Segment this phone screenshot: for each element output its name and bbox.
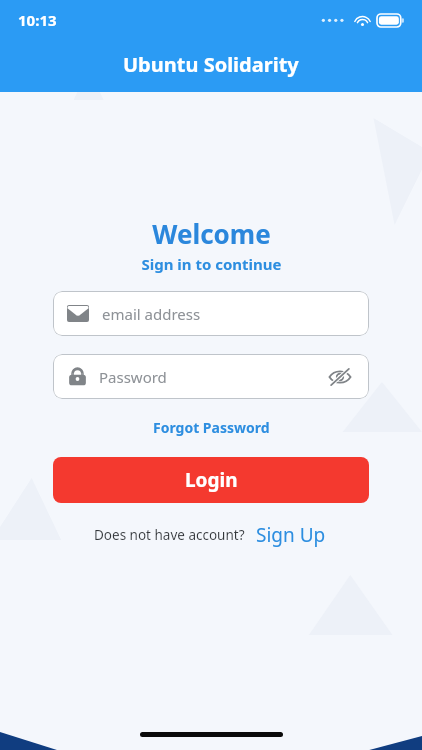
button[interactable]: Forgot Password [145,415,278,440]
staticText: Ubuntu Solidarity [123,51,299,78]
button[interactable]: Sign Up [253,520,329,550]
staticText: email address [102,304,201,324]
button[interactable]: email address [53,291,369,336]
button[interactable]: Login [53,457,369,503]
button[interactable]: Password [53,354,369,399]
staticText: 10:13 [18,10,57,30]
staticText: Does not have account? [94,526,245,544]
staticText: Forgot Password [153,418,270,437]
staticText: Login [185,467,238,493]
staticText: Sign Up [256,522,326,548]
button[interactable]: Show password [325,362,355,392]
staticText: Welcome [152,216,271,251]
staticText: Password [99,367,167,387]
staticText: Sign in to continue [141,254,282,274]
